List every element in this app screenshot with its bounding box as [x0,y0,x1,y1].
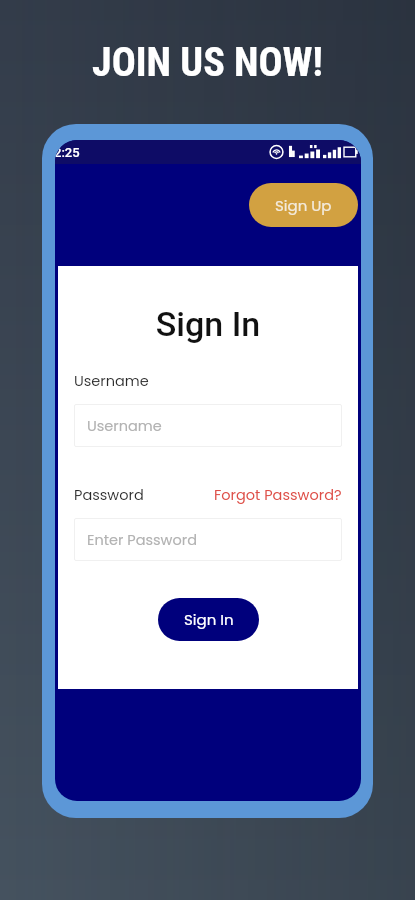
button[interactable]: Username [74,404,342,447]
staticText: Sign In [184,609,234,630]
staticText: Username [87,416,162,436]
button[interactable]: Sign In [158,598,259,641]
staticText: Password [74,485,144,505]
button[interactable]: Forgot Password? [214,485,342,505]
staticText: 2:25 [55,145,80,160]
staticText: Sign In [74,304,342,344]
staticText: Username [74,371,149,391]
staticText: Enter Password [87,530,197,550]
staticText: JOIN US NOW! [92,39,323,86]
button[interactable]: Enter Password [74,518,342,561]
button[interactable]: Sign Up [249,183,358,227]
staticText: Sign Up [275,195,332,216]
